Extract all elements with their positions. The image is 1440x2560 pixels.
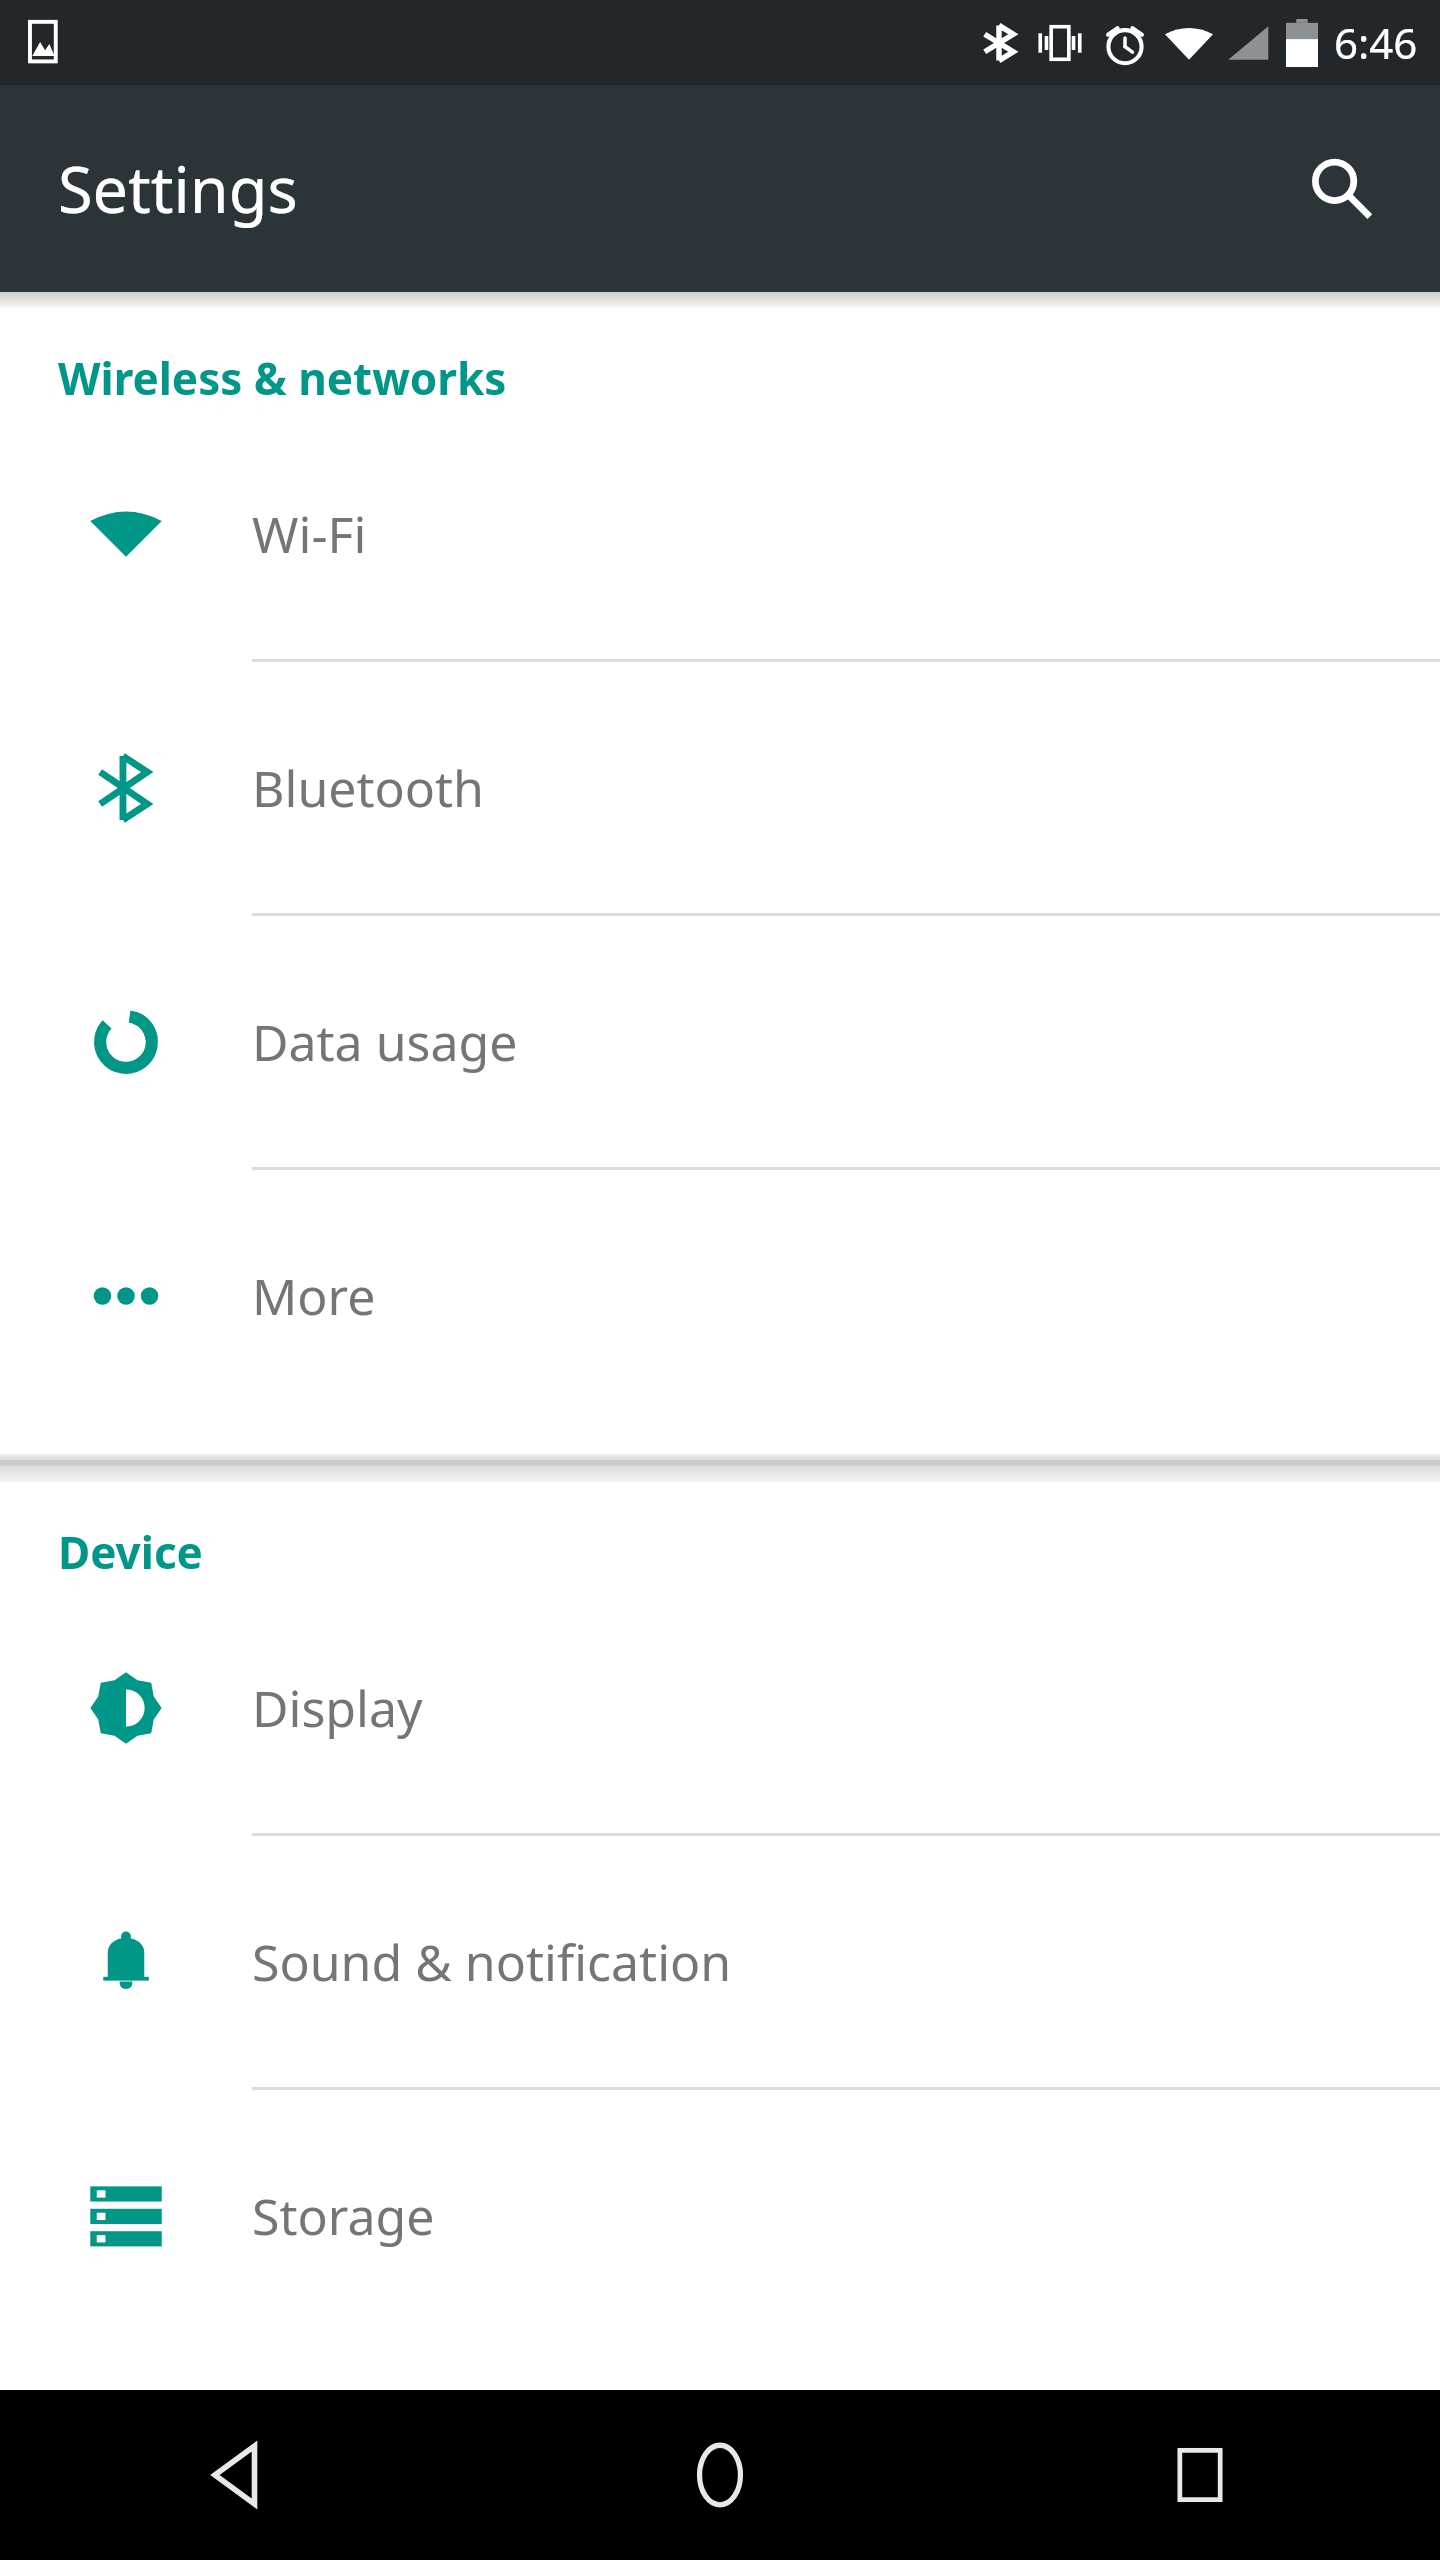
- staticText: Data usage: [252, 1008, 518, 1076]
- button[interactable]: Data usage: [0, 916, 1440, 1170]
- button[interactable]: Sound & notification: [0, 1836, 1440, 2090]
- staticText: Bluetooth: [252, 754, 484, 822]
- button[interactable]: Bluetooth: [0, 662, 1440, 916]
- staticText: Settings: [58, 146, 298, 232]
- button[interactable]: More: [0, 1170, 1440, 1421]
- staticText: 6:46: [1334, 14, 1418, 71]
- staticText: Storage: [252, 2182, 435, 2250]
- button[interactable]: Display: [0, 1582, 1440, 1836]
- button[interactable]: Search: [1286, 134, 1396, 244]
- staticText: Wi-Fi: [252, 500, 367, 568]
- button[interactable]: Wi-Fi: [0, 408, 1440, 662]
- staticText: Wireless & networks: [58, 348, 507, 408]
- button[interactable]: Home: [480, 2390, 960, 2560]
- staticText: Sound & notification: [252, 1928, 732, 1996]
- staticText: Device: [58, 1522, 203, 1582]
- button[interactable]: Storage: [0, 2090, 1440, 2341]
- staticText: Display: [252, 1674, 423, 1742]
- staticText: More: [252, 1262, 376, 1330]
- button[interactable]: Back: [0, 2390, 480, 2560]
- button[interactable]: Recent apps: [960, 2390, 1440, 2560]
